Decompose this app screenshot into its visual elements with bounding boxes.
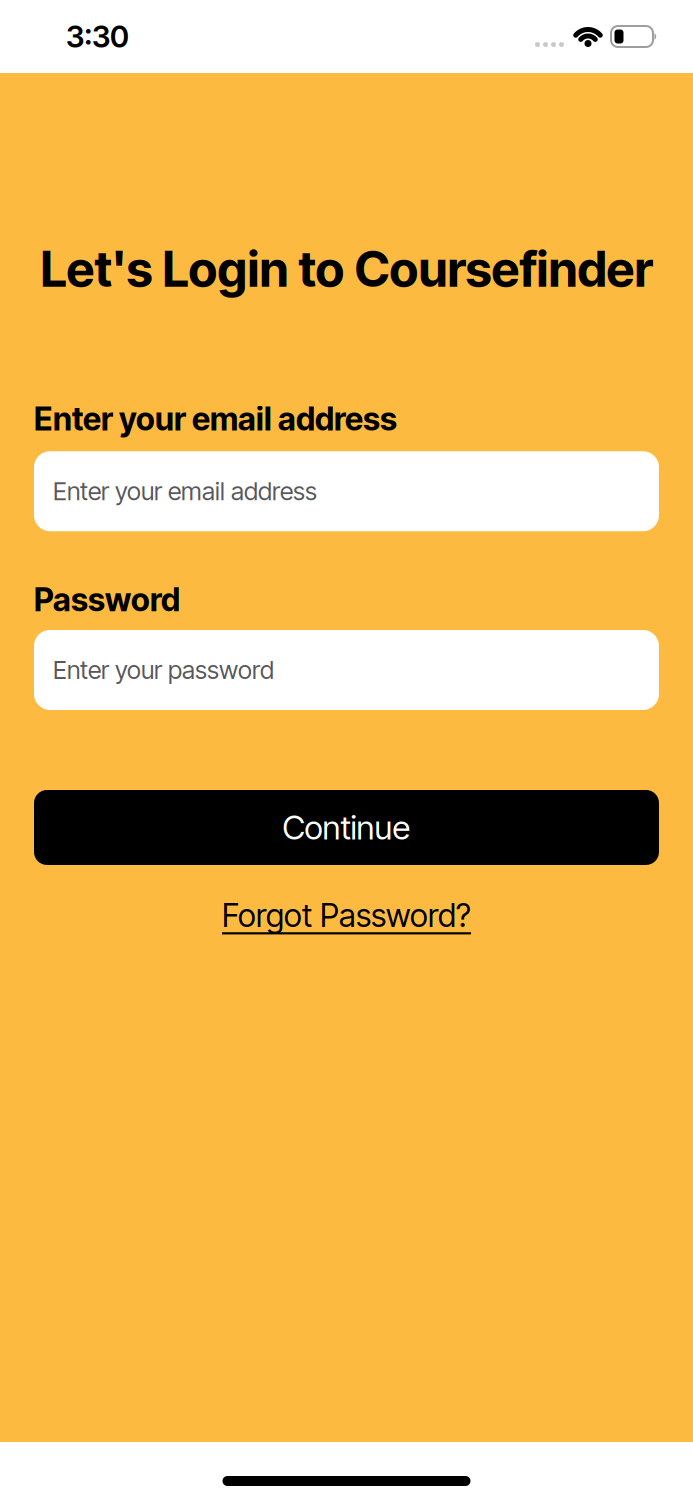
staticText: Let's Login to Coursefinder [40, 239, 652, 298]
staticText: Enter your email address [34, 399, 397, 438]
button[interactable]: Enter your password [34, 630, 659, 710]
button[interactable]: Forgot Password? [222, 896, 471, 935]
button[interactable]: Continue [34, 790, 659, 865]
staticText: Enter your email address [53, 476, 317, 506]
staticText: 3:30 [66, 18, 129, 55]
staticText: Password [34, 580, 180, 619]
staticText: Enter your password [53, 655, 274, 685]
button[interactable]: Enter your email address [34, 451, 659, 531]
staticText: Forgot Password? [222, 896, 471, 935]
staticText: Continue [282, 807, 410, 847]
